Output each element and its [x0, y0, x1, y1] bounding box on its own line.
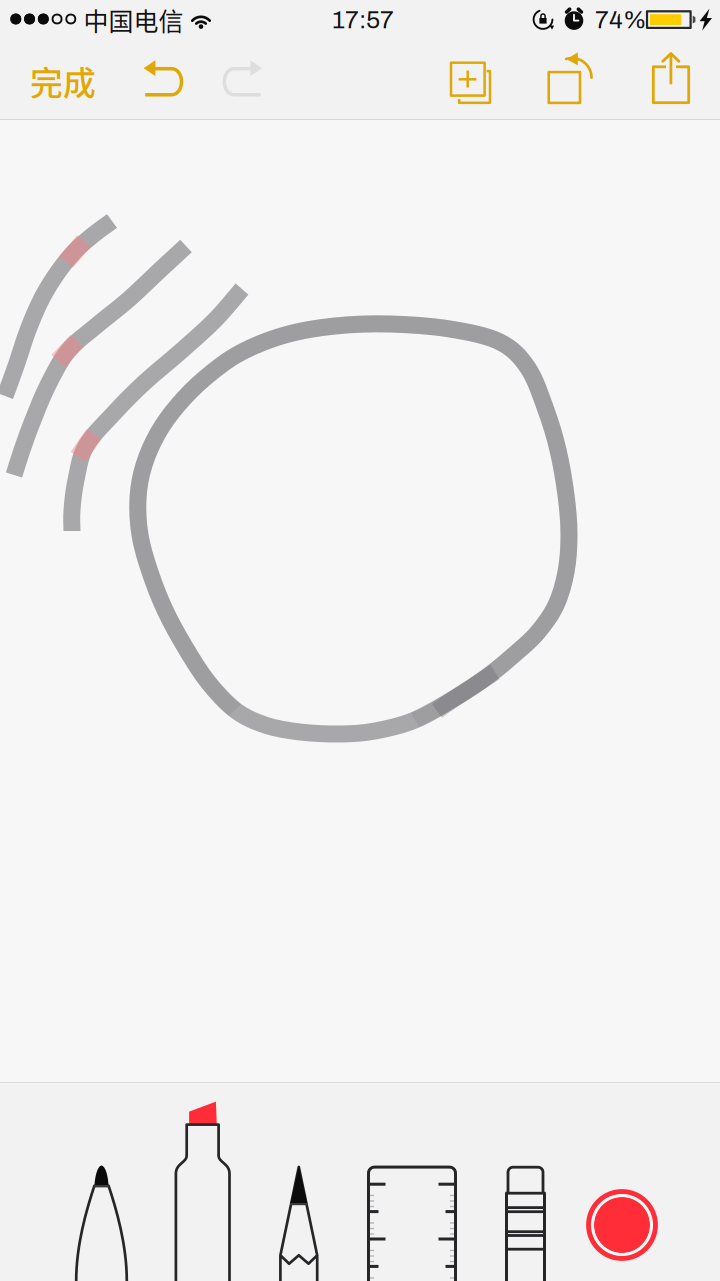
staticText: 17:57	[332, 6, 394, 33]
button[interactable]: Highlighter	[174, 1101, 231, 1281]
staticText: 完成	[30, 57, 96, 105]
button[interactable]: 完成	[14, 42, 112, 118]
button[interactable]: Eraser	[505, 1166, 546, 1281]
button[interactable]: Rotate	[539, 45, 601, 115]
staticText: 74%	[595, 6, 647, 33]
staticText: 中国电信	[83, 2, 183, 38]
button[interactable]: Pen	[76, 1165, 127, 1281]
button[interactable]: Redo	[213, 52, 271, 107]
button[interactable]: Add page	[442, 50, 500, 109]
button[interactable]: Pencil	[279, 1165, 319, 1281]
button[interactable]: Share	[644, 45, 698, 114]
button[interactable]: Colour red	[586, 1189, 658, 1281]
button[interactable]: Ruler	[367, 1166, 457, 1281]
button[interactable]: Undo	[135, 52, 193, 107]
